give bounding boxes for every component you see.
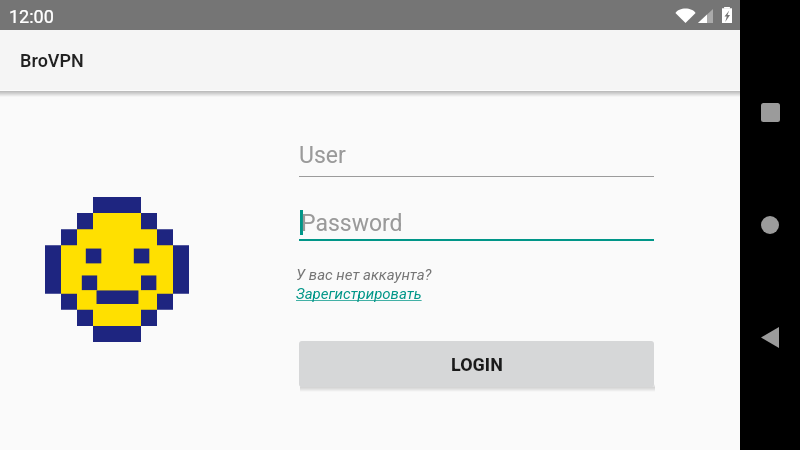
button[interactable]: Зарегистрировать <box>296 285 422 303</box>
button[interactable]: Home <box>740 195 800 255</box>
staticText: LOGIN <box>451 354 503 375</box>
staticText: У вас нет аккаунта? <box>296 266 432 284</box>
button[interactable]: User name field <box>299 136 654 177</box>
button[interactable]: Recent apps <box>740 82 800 142</box>
staticText: BroVPN <box>20 50 84 71</box>
staticText: Password <box>301 210 403 237</box>
staticText: 12:00 <box>9 6 54 27</box>
button[interactable]: Password field <box>299 204 654 241</box>
button[interactable]: LOGIN <box>299 341 654 387</box>
button[interactable]: Back <box>740 307 800 367</box>
staticText: User <box>299 142 346 169</box>
